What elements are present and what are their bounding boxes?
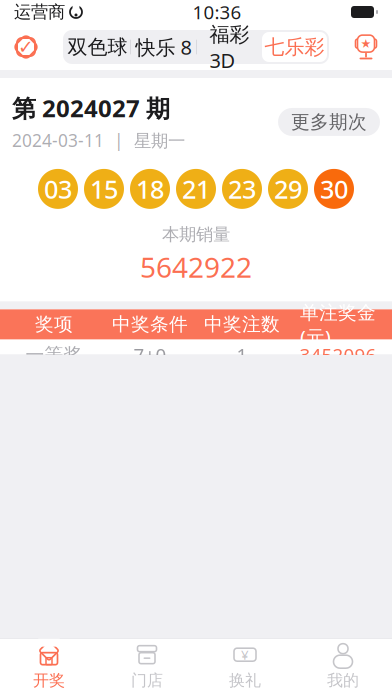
button[interactable]: 开奖 <box>0 635 98 696</box>
staticText: 福彩 3D <box>209 20 249 73</box>
staticText: 10:36 <box>192 0 241 24</box>
staticText: 更多期次 <box>291 110 367 133</box>
staticText: 换礼 <box>229 671 261 690</box>
staticText: 1 <box>236 342 247 367</box>
staticText: 23 <box>228 172 256 206</box>
staticText: 2024-03-11 | 星期一 <box>12 129 185 152</box>
button[interactable]: 我的 <box>294 635 392 696</box>
staticText: 21 <box>182 172 210 206</box>
staticText: 本期销量 <box>162 224 230 245</box>
button[interactable]: 更多期次 <box>278 108 380 136</box>
staticText: 29 <box>274 172 302 206</box>
staticText: 运营商 <box>14 1 65 23</box>
staticText: ✓ <box>18 36 34 58</box>
staticText: 一等奖 <box>25 343 82 366</box>
button[interactable]: 中奖排行 <box>350 31 382 63</box>
staticText: 山东1注，共1注。 <box>12 618 174 644</box>
staticText: 3452096 <box>299 342 376 367</box>
staticText: 中奖注数 <box>204 313 280 336</box>
staticText: 中奖条件 <box>112 313 188 336</box>
staticText: 门店 <box>131 671 163 690</box>
staticText: 七乐彩 <box>264 35 324 59</box>
button[interactable]: 福彩 3D <box>197 32 262 62</box>
staticText: 开奖 <box>33 671 65 690</box>
staticText: 15 <box>90 172 118 206</box>
staticText: 第 2024027 期 <box>12 92 170 124</box>
staticText: 单注奖金 (元) <box>300 300 376 349</box>
staticText: 18 <box>136 172 164 206</box>
button[interactable]: ¥ <box>196 635 294 696</box>
staticText: 30 <box>320 172 348 206</box>
button[interactable]: 我的彩票 <box>10 31 42 63</box>
staticText: 双色球 <box>67 35 127 59</box>
button[interactable]: 双色球 <box>65 32 130 62</box>
button[interactable]: 门店 <box>98 635 196 696</box>
staticText: 5642922 <box>140 248 252 285</box>
staticText: 03 <box>44 172 72 206</box>
staticText: 奖项 <box>35 313 73 336</box>
button[interactable]: 快乐 8 <box>131 32 196 62</box>
staticText: 快乐 8 <box>135 34 191 60</box>
button[interactable]: 七乐彩 <box>262 32 327 62</box>
staticText: 我的 <box>327 671 359 690</box>
staticText: 7+0 <box>133 342 166 367</box>
staticText: ★ <box>360 37 371 50</box>
staticText: ¥ <box>241 646 249 663</box>
